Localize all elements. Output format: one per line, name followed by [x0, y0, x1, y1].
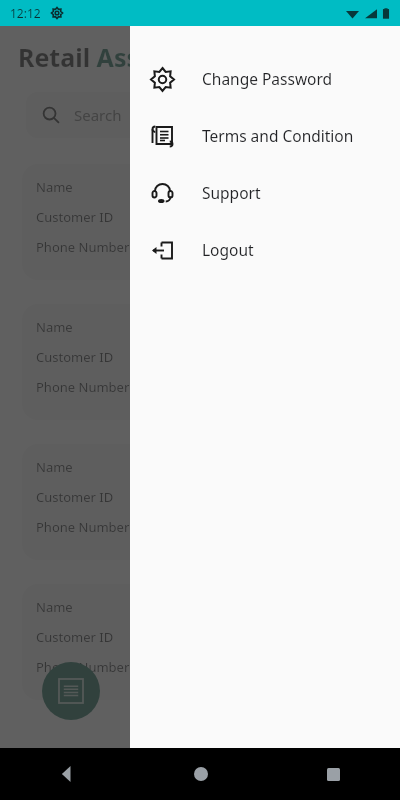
staticText: Change Password: [202, 68, 333, 89]
staticText: Customer ID: [36, 348, 114, 366]
button[interactable]: Change Password: [130, 50, 400, 107]
button[interactable]: Logout: [130, 221, 400, 278]
staticText: Terms and Condition: [202, 125, 354, 146]
staticText: Customer ID: [36, 628, 114, 646]
button[interactable]: Open list: [42, 662, 100, 720]
staticText: Customer ID: [36, 488, 114, 506]
button[interactable]: Search: [26, 92, 374, 138]
staticText: Phone Number: [36, 238, 130, 256]
staticText: Name: [36, 458, 73, 476]
staticText: Name: [36, 598, 73, 616]
button[interactable]: Back: [0, 748, 134, 800]
button[interactable]: Recents: [267, 748, 400, 800]
staticText: Support: [202, 182, 261, 203]
staticText: Phone Number: [36, 378, 130, 396]
button[interactable]: Home: [134, 748, 267, 800]
staticText: Name: [36, 318, 73, 336]
button[interactable]: Name: [22, 444, 378, 560]
button[interactable]: Terms and Condition: [130, 107, 400, 164]
staticText: 12:12: [10, 5, 41, 21]
button[interactable]: Name: [22, 304, 378, 420]
staticText: Phone Number: [36, 658, 130, 676]
button[interactable]: Name: [22, 584, 378, 700]
button[interactable]: [0, 26, 130, 748]
button[interactable]: Name: [22, 164, 378, 280]
button[interactable]: Support: [130, 164, 400, 221]
staticText: Phone Number: [36, 518, 130, 536]
staticText: Customer ID: [36, 208, 114, 226]
staticText: Search: [74, 105, 122, 125]
staticText: Retail Assist: [18, 40, 170, 74]
staticText: Name: [36, 178, 73, 196]
staticText: Logout: [202, 239, 254, 260]
